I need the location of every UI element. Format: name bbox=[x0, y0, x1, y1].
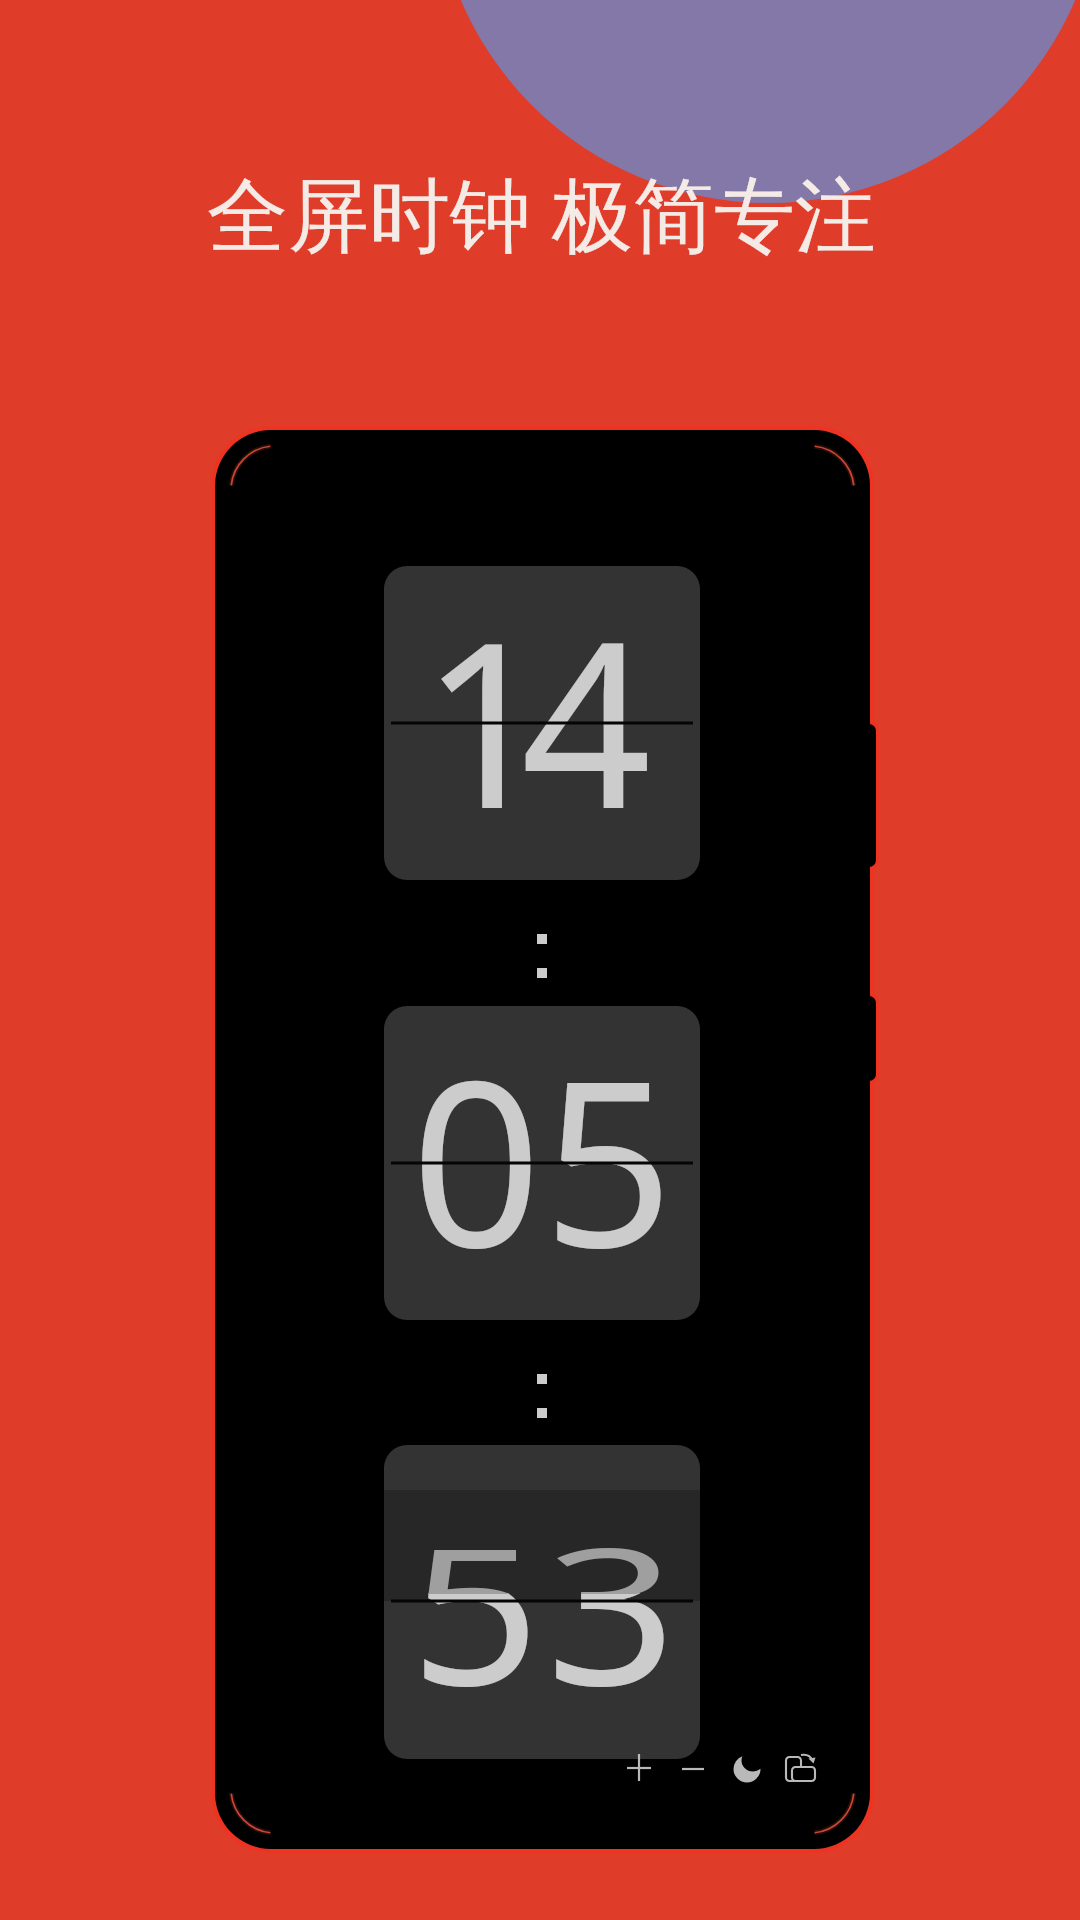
staticText: 5 bbox=[543, 1003, 674, 1314]
button[interactable]: Increase bbox=[613, 1742, 665, 1794]
staticText: 3 bbox=[546, 1502, 677, 1688]
button[interactable]: Seconds 53 bbox=[384, 1445, 700, 1759]
staticText: 3 bbox=[546, 1441, 677, 1752]
button[interactable]: Night mode bbox=[721, 1743, 773, 1795]
button[interactable]: Decrease bbox=[667, 1743, 719, 1795]
staticText: 5 bbox=[410, 1441, 541, 1752]
staticText: 4 bbox=[521, 564, 652, 875]
staticText: 1 bbox=[421, 564, 552, 875]
staticText: 5 bbox=[410, 1502, 541, 1688]
button[interactable]: Minutes 05 bbox=[384, 1006, 700, 1320]
button[interactable]: Hours 14 bbox=[384, 566, 700, 880]
staticText: 全屏时钟 极简专注 bbox=[207, 157, 877, 268]
staticText: 0 bbox=[411, 1003, 542, 1314]
button[interactable]: Rotate screen bbox=[774, 1743, 826, 1795]
